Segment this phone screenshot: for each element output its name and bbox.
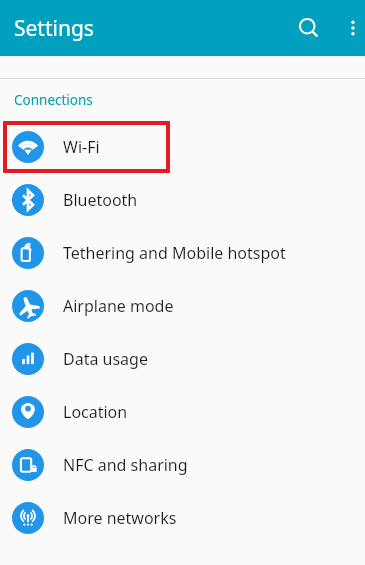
- staticText: Location: [63, 401, 128, 423]
- button[interactable]: Location: [0, 385, 365, 438]
- button[interactable]: Airplane mode: [0, 279, 365, 332]
- staticText: Data usage: [63, 348, 148, 370]
- staticText: Bluetooth: [63, 189, 138, 211]
- button[interactable]: Search: [288, 7, 330, 49]
- button[interactable]: NFC and sharing: [0, 438, 365, 491]
- button[interactable]: Bluetooth: [0, 173, 365, 226]
- staticText: Tethering and Mobile hotspot: [63, 242, 286, 264]
- staticText: Airplane mode: [63, 295, 174, 317]
- button[interactable]: More networks: [0, 491, 365, 544]
- staticText: Wi-Fi: [63, 136, 100, 158]
- staticText: More networks: [63, 507, 177, 529]
- button[interactable]: More options: [336, 11, 365, 45]
- button[interactable]: Data usage: [0, 332, 365, 385]
- staticText: Settings: [14, 14, 94, 43]
- button[interactable]: Tethering and Mobile hotspot: [0, 226, 365, 279]
- staticText: Connections: [14, 91, 93, 109]
- staticText: NFC and sharing: [63, 454, 188, 476]
- button[interactable]: Wi-Fi: [0, 120, 365, 173]
